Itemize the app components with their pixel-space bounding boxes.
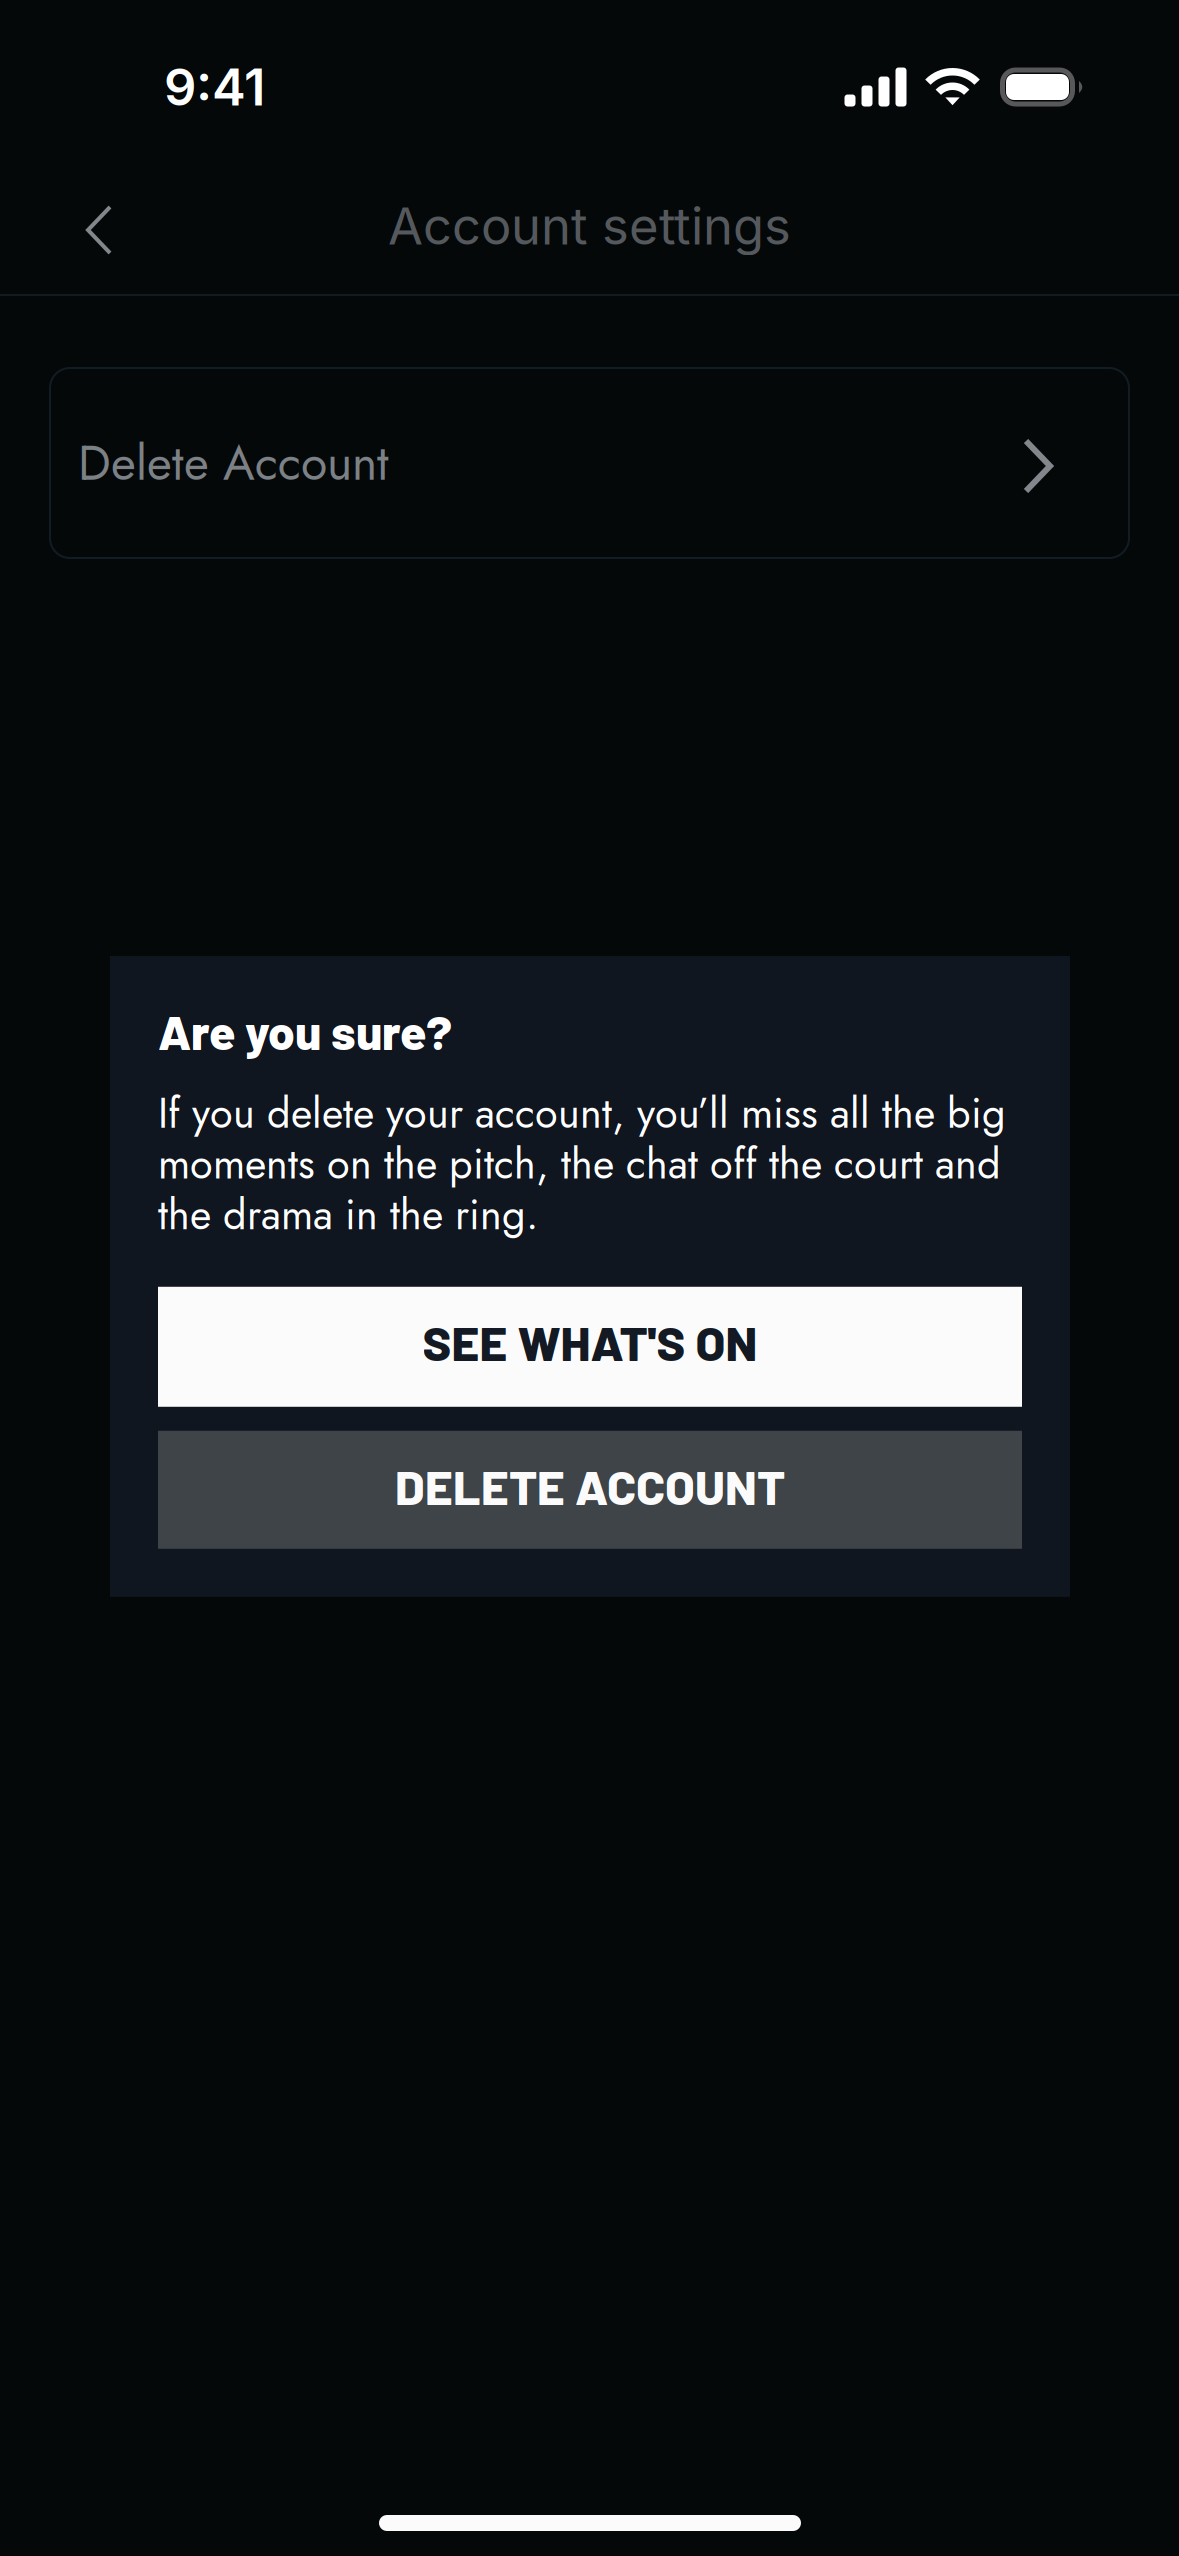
button[interactable]: Delete Account bbox=[49, 367, 1130, 559]
staticText: Account settings bbox=[388, 195, 791, 257]
staticText: Delete Account bbox=[78, 428, 389, 498]
staticText: Are you sure? bbox=[158, 1002, 452, 1060]
button[interactable]: DELETE ACCOUNT bbox=[158, 1431, 1022, 1549]
button[interactable]: Back bbox=[55, 182, 143, 270]
staticText: SEE WHAT'S ON bbox=[422, 1313, 757, 1371]
staticText: If you delete your account, you’ll miss … bbox=[158, 1084, 1006, 1245]
staticText: 9:41 bbox=[164, 56, 265, 118]
staticText: DELETE ACCOUNT bbox=[395, 1457, 785, 1515]
button[interactable]: SEE WHAT'S ON bbox=[158, 1287, 1022, 1407]
